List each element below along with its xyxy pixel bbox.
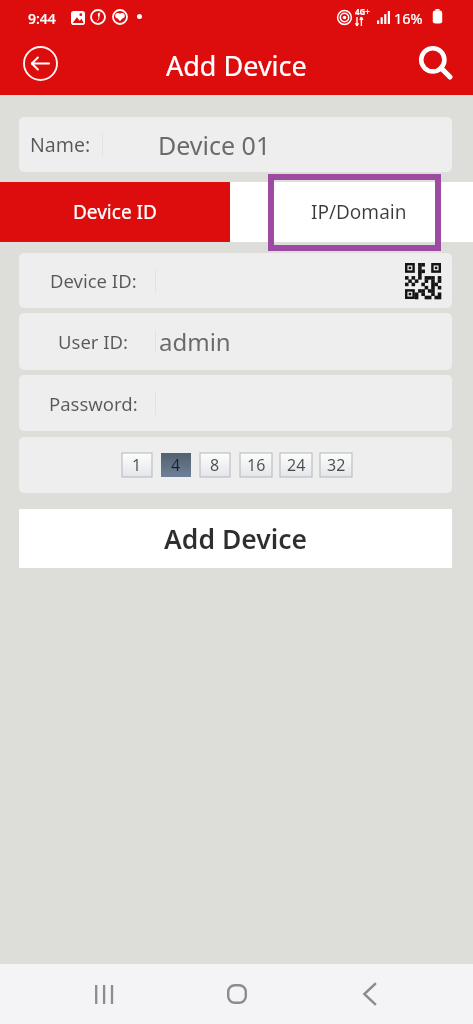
staticText: 24 — [287, 454, 306, 476]
button[interactable]: 1 — [19, 437, 452, 493]
staticText: 16% — [394, 8, 423, 28]
staticText: 9:44 — [28, 9, 56, 28]
staticText: Add Device — [164, 521, 308, 557]
staticText: Device ID: — [50, 268, 137, 293]
staticText: Add Device — [166, 47, 307, 84]
staticText: 32 — [327, 454, 346, 476]
button[interactable]: 32 — [320, 453, 352, 477]
staticText: 1 — [132, 454, 142, 476]
staticText: 8 — [210, 454, 220, 476]
staticText: admin — [159, 325, 231, 358]
button[interactable]: IP/Domain — [268, 182, 441, 242]
staticText: IP/Domain — [311, 199, 407, 225]
staticText: Device ID — [73, 199, 157, 225]
button[interactable]: Add Device — [19, 509, 452, 568]
button[interactable]: 16 — [240, 453, 272, 477]
button[interactable]: User ID: — [19, 313, 452, 370]
button[interactable]: Back — [349, 974, 389, 1014]
button[interactable]: Back — [20, 43, 61, 84]
button[interactable]: Password: — [19, 375, 452, 431]
button[interactable]: 8 — [200, 453, 230, 477]
staticText: 4 — [171, 454, 181, 476]
button[interactable]: Search — [415, 42, 459, 86]
button[interactable]: Device ID: — [19, 253, 452, 308]
staticText: Name: — [30, 131, 91, 158]
button[interactable]: Device ID — [0, 182, 230, 242]
button[interactable]: 1 — [122, 453, 152, 477]
staticText: Device 01 — [158, 128, 271, 162]
staticText: 16 — [247, 454, 266, 476]
button[interactable]: Recent apps — [84, 974, 124, 1014]
button[interactable]: Home — [217, 974, 257, 1014]
button[interactable]: Name: — [19, 117, 452, 172]
button[interactable]: Scan QR code — [404, 262, 442, 300]
button[interactable]: 4 — [161, 453, 191, 477]
staticText: Password: — [49, 391, 138, 416]
staticText: User ID: — [58, 329, 129, 354]
staticText: 4G+ — [355, 6, 370, 17]
button[interactable]: 24 — [280, 453, 312, 477]
